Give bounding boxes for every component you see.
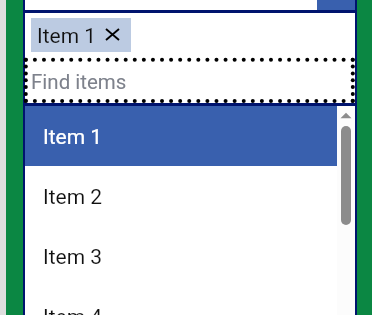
button[interactable]: Item 1 <box>31 18 131 52</box>
staticText: Find items <box>31 70 127 94</box>
other: Remove Item 1 <box>105 28 120 41</box>
staticText: Item 3 <box>43 245 103 270</box>
button[interactable] <box>341 126 351 225</box>
staticText: Item 4 <box>43 305 103 315</box>
button[interactable]: Item 2 <box>25 166 355 226</box>
button[interactable]: Item 3 <box>25 226 355 286</box>
button[interactable]: Find items <box>25 58 355 103</box>
other: Scroll up <box>337 106 355 315</box>
staticText: Item 1 <box>37 24 97 49</box>
button[interactable]: Item 4 <box>25 286 355 315</box>
staticText: Item 1 <box>43 125 103 150</box>
button[interactable]: Item 1 <box>25 106 355 166</box>
staticText: Item 2 <box>43 185 103 210</box>
